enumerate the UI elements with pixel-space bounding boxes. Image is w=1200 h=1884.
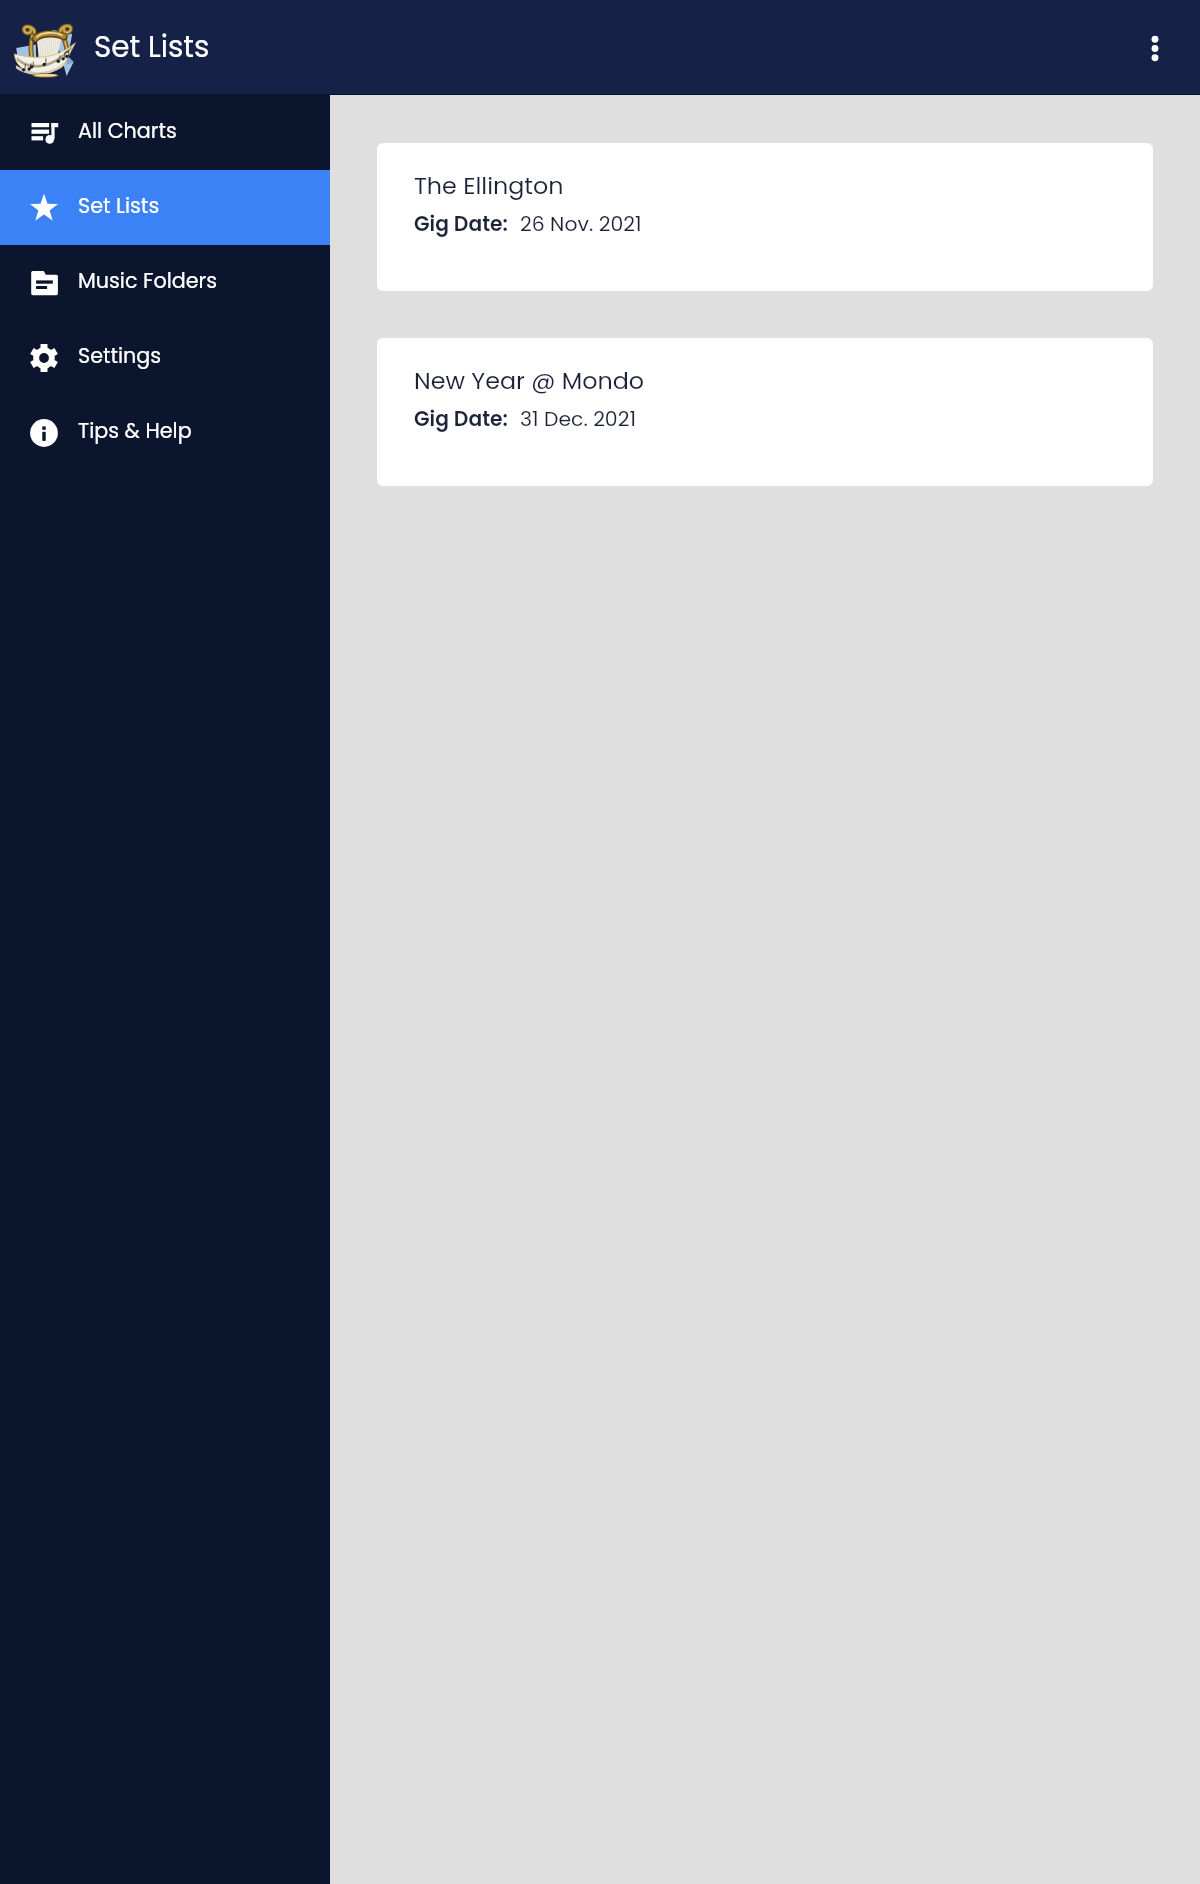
staticText: Tips & Help xyxy=(78,416,192,445)
staticText: Gig Date: xyxy=(414,210,508,238)
staticText: The Ellington xyxy=(414,169,564,202)
staticText: New Year @ Mondo xyxy=(414,364,645,397)
staticText: Music Folders xyxy=(78,266,218,295)
staticText: Set Lists xyxy=(94,26,210,67)
button[interactable]: Tips & Help xyxy=(0,395,330,470)
staticText: Gig Date: xyxy=(414,405,508,433)
staticText: Set Lists xyxy=(78,191,160,220)
staticText: Settings xyxy=(78,341,162,370)
button[interactable]: The Ellington xyxy=(377,143,1153,291)
staticText: All Charts xyxy=(78,116,177,145)
staticText: 26 Nov. 2021 xyxy=(520,210,642,239)
button[interactable]: More options xyxy=(1110,3,1200,93)
button[interactable]: Set Lists xyxy=(0,170,330,245)
button[interactable]: Music Folders xyxy=(0,245,330,320)
button[interactable]: New Year @ Mondo xyxy=(377,338,1153,486)
button[interactable]: All Charts xyxy=(0,95,330,170)
staticText: 31 Dec. 2021 xyxy=(520,405,636,434)
button[interactable]: Settings xyxy=(0,320,330,395)
